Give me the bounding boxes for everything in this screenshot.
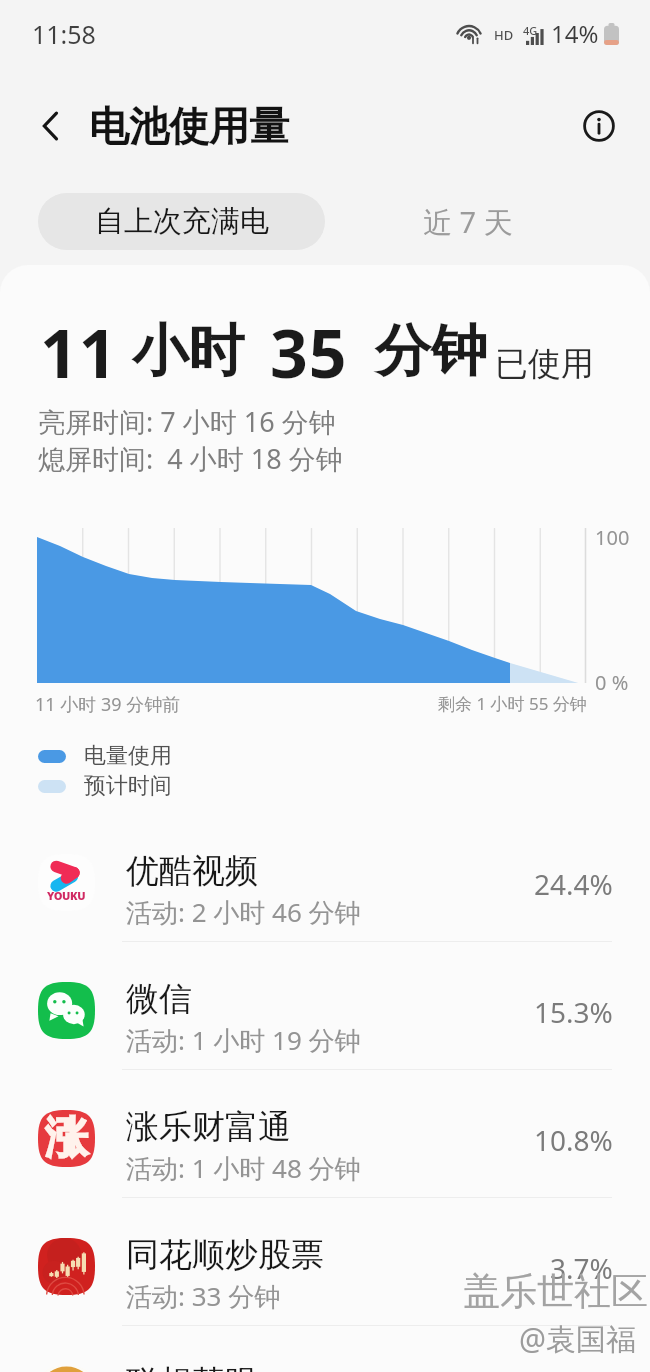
staticText: 电池使用量 <box>89 101 289 151</box>
staticText: 15.3% <box>534 993 613 1031</box>
staticText: 微信 <box>126 978 192 1020</box>
staticText: 电量使用 <box>84 742 172 770</box>
button[interactable]: 微信 <box>0 947 650 1075</box>
button[interactable]: 联想慧眼 <box>0 1331 650 1372</box>
staticText: YOUKU <box>47 888 86 903</box>
staticText: 活动: 33 分钟 <box>126 1278 281 1314</box>
staticText: 近 7 天 <box>423 202 513 242</box>
staticText: 亮屏时间: 7 小时 16 分钟 <box>38 403 336 440</box>
staticText: 剩余 1 小时 55 分钟 <box>438 692 587 715</box>
staticText: 分钟 <box>375 316 487 387</box>
staticText: 100 <box>595 524 630 551</box>
staticText: 优酷视频 <box>126 850 258 892</box>
staticText: 0 % <box>595 669 629 696</box>
staticText: 10.8% <box>534 1121 613 1159</box>
staticText: 11 小时 39 分钟前 <box>35 692 181 717</box>
staticText: 已使用 <box>495 343 594 385</box>
button[interactable]: 涨 <box>0 1075 650 1203</box>
staticText: @袁国福 <box>519 1318 636 1359</box>
staticText: 同花顺炒股票 <box>126 1234 324 1276</box>
staticText: 涨 <box>45 1111 88 1165</box>
button[interactable]: YOUKU <box>0 819 650 947</box>
staticText: 预计时间 <box>84 772 172 800</box>
button[interactable]: Information <box>573 100 625 152</box>
staticText: 14% <box>551 17 599 50</box>
staticText: 联想慧眼 <box>126 1362 258 1372</box>
staticText: 盖乐世社区 <box>463 1268 648 1315</box>
staticText: 活动: 1 小时 19 分钟 <box>126 1022 361 1058</box>
staticText: 活动: 1 小时 48 分钟 <box>126 1150 361 1186</box>
staticText: 24.4% <box>534 865 613 903</box>
staticText: 11:58 <box>32 17 96 51</box>
button[interactable]: Back <box>26 100 78 152</box>
staticText: 活动: 2 小时 46 分钟 <box>126 894 361 930</box>
staticText: 4G <box>523 23 538 38</box>
staticText: 11 <box>40 307 118 397</box>
staticText: 3.7% <box>550 1249 613 1287</box>
button[interactable]: 自上次充满电 <box>38 193 325 250</box>
button[interactable]: 近 7 天 <box>353 193 583 250</box>
staticText: 熄屏时间: 4 小时 18 分钟 <box>38 440 343 477</box>
staticText: 涨乐财富通 <box>126 1106 291 1148</box>
staticText: 35 <box>270 307 348 397</box>
staticText: HD <box>494 26 514 44</box>
staticText: 自上次充满电 <box>95 203 269 240</box>
staticText: 小时 <box>132 316 244 387</box>
button[interactable]: 同花顺炒股票 <box>0 1203 650 1331</box>
